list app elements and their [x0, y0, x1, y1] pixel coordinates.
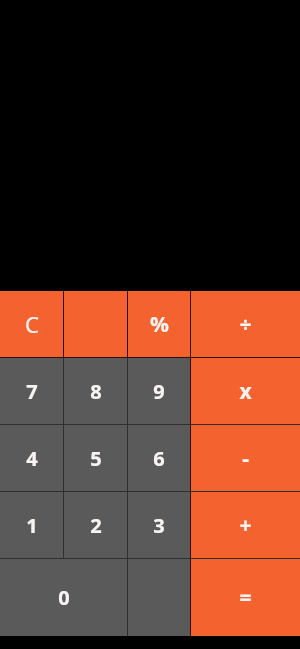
button[interactable]: Percent: [128, 291, 190, 357]
staticText: +: [239, 511, 252, 540]
button[interactable]: C: [0, 291, 63, 357]
button[interactable]: Divide: [191, 291, 300, 357]
staticText: %: [150, 310, 169, 339]
staticText: =: [239, 583, 252, 612]
button[interactable]: 6: [128, 425, 190, 491]
staticText: 1: [26, 512, 38, 539]
button[interactable]: 9: [128, 358, 190, 424]
staticText: 5: [90, 445, 102, 472]
button[interactable]: 7: [0, 358, 63, 424]
button[interactable]: 1: [0, 492, 63, 558]
button[interactable]: 4: [0, 425, 63, 491]
staticText: -: [242, 444, 249, 473]
staticText: 0: [58, 584, 70, 611]
staticText: 2: [90, 512, 102, 539]
button[interactable]: 8: [64, 358, 127, 424]
staticText: x: [239, 377, 252, 406]
staticText: 8: [90, 378, 102, 405]
staticText: 6: [153, 445, 165, 472]
button[interactable]: Equals: [191, 559, 300, 636]
staticText: 9: [153, 378, 165, 405]
staticText: ÷: [239, 310, 252, 339]
button[interactable]: 0: [0, 559, 127, 636]
button[interactable]: 5: [64, 425, 127, 491]
staticText: 4: [26, 445, 38, 472]
button[interactable]: 2: [64, 492, 127, 558]
button[interactable]: 3: [128, 492, 190, 558]
staticText: C: [25, 309, 39, 339]
staticText: 7: [26, 378, 38, 405]
staticText: 3: [153, 512, 165, 539]
button[interactable]: Multiply: [191, 358, 300, 424]
button[interactable]: Plus: [191, 492, 300, 558]
button[interactable]: Minus: [191, 425, 300, 491]
